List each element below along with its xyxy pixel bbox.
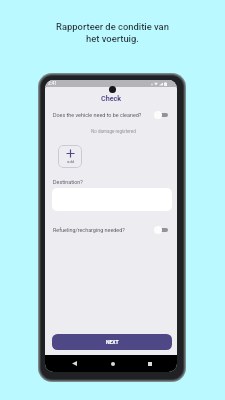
button[interactable]: Does the vehicle need to be cleaned? [45,109,177,121]
button[interactable]: Back [63,355,85,372]
staticText: Destination? [53,179,83,185]
staticText: Check [101,94,122,102]
staticText: Does the vehicle need to be cleaned? [53,112,142,118]
staticText: Rapporteer de conditie van het voertuig. [0,21,225,44]
staticText: add [67,159,75,164]
button[interactable]: Add photo [58,145,82,168]
button[interactable]: Refueling/recharging needed? [45,224,177,236]
button[interactable]: Toggle [154,111,168,119]
button[interactable]: Recent apps [139,355,161,372]
button[interactable]: Toggle [154,226,168,234]
button[interactable]: Home [102,355,124,372]
staticText: NEXT [106,339,119,345]
staticText: 2:41 [48,81,57,86]
staticText: No damage registered [91,129,136,134]
staticText: Refueling/recharging needed? [53,227,125,233]
button[interactable]: NEXT [52,334,172,350]
